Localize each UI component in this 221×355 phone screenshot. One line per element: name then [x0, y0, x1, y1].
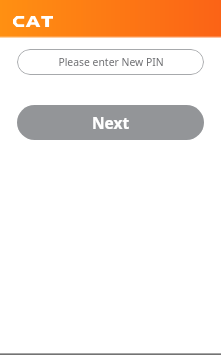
button[interactable]: Next	[17, 105, 204, 140]
staticText: Next	[92, 112, 130, 133]
button[interactable]: Please enter New PIN	[17, 49, 204, 75]
other: CAT	[13, 16, 53, 27]
staticText: Please enter New PIN	[58, 55, 164, 69]
